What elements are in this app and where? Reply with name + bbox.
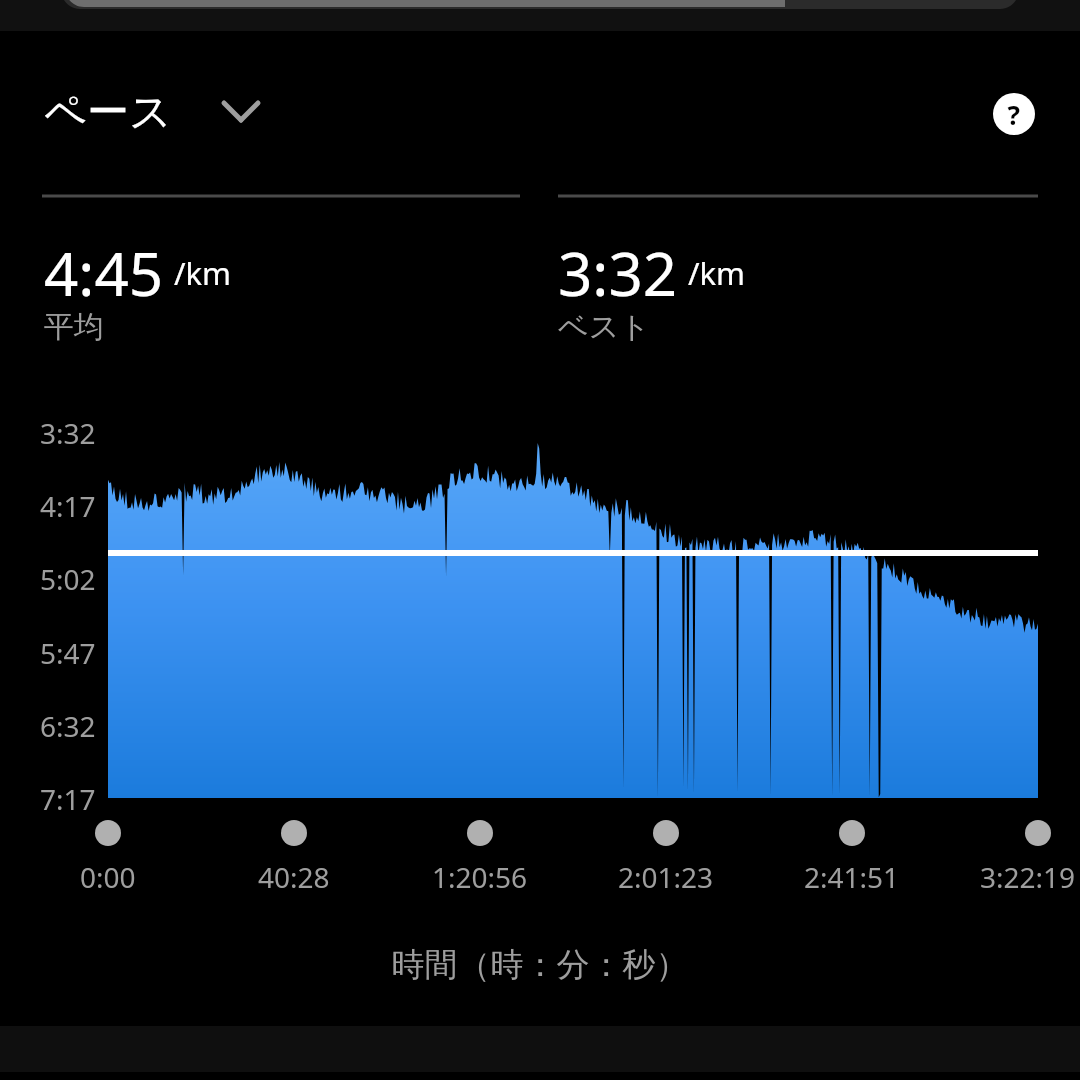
button[interactable]: Help	[978, 78, 1050, 150]
button[interactable]	[30, 78, 265, 150]
